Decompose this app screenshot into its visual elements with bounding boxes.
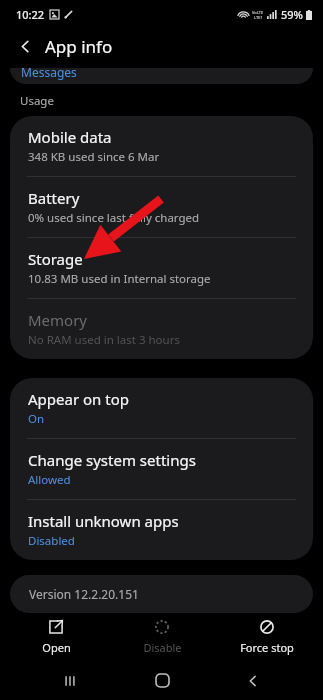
button[interactable]: Back xyxy=(231,661,275,700)
staticText: Messages xyxy=(21,68,77,80)
staticText: 10:22 xyxy=(16,7,45,22)
button[interactable]: Appear on top xyxy=(10,378,313,439)
button[interactable]: Home xyxy=(140,661,184,700)
staticText: Usage xyxy=(20,93,54,109)
button[interactable]: Open xyxy=(6,615,106,659)
staticText: Battery xyxy=(28,188,80,208)
staticText: LTE1 xyxy=(254,15,263,20)
staticText: Install unknown apps xyxy=(28,511,179,531)
staticText: Mobile data xyxy=(28,127,112,147)
button[interactable]: Install unknown apps xyxy=(10,500,313,560)
staticText: Open xyxy=(42,640,71,655)
button[interactable]: Storage xyxy=(10,238,313,299)
staticText: 0% used since last fully charged xyxy=(28,210,200,226)
staticText: On xyxy=(28,411,45,427)
staticText: No RAM used in last 3 hours xyxy=(28,332,180,348)
staticText: VoLTE xyxy=(252,10,264,15)
button[interactable]: Mobile data xyxy=(10,116,313,177)
button[interactable]: Memory xyxy=(10,299,313,359)
button[interactable]: Messages xyxy=(10,68,313,84)
staticText: Appear on top xyxy=(28,389,129,409)
staticText: Allowed xyxy=(28,472,71,488)
button[interactable]: Disable xyxy=(112,615,212,659)
staticText: Version 12.2.20.151 xyxy=(29,586,139,602)
button[interactable]: Back xyxy=(10,31,40,61)
staticText: 59% xyxy=(281,7,303,22)
staticText: Force stop xyxy=(240,640,294,655)
button[interactable]: Force stop xyxy=(217,615,317,659)
button[interactable]: Version 12.2.20.151 xyxy=(10,575,313,613)
button[interactable]: Change system settings xyxy=(10,439,313,500)
button[interactable]: Battery xyxy=(10,177,313,238)
staticText: App info xyxy=(45,35,113,58)
staticText: Memory xyxy=(28,310,88,330)
staticText: 348 KB used since 6 Mar xyxy=(28,149,160,165)
staticText: Disable xyxy=(143,640,182,655)
staticText: Change system settings xyxy=(28,450,196,470)
staticText: Storage xyxy=(28,249,83,269)
staticText: Disabled xyxy=(28,533,75,549)
button[interactable]: Recents xyxy=(48,661,92,700)
staticText: 10.83 MB used in Internal storage xyxy=(28,271,211,287)
